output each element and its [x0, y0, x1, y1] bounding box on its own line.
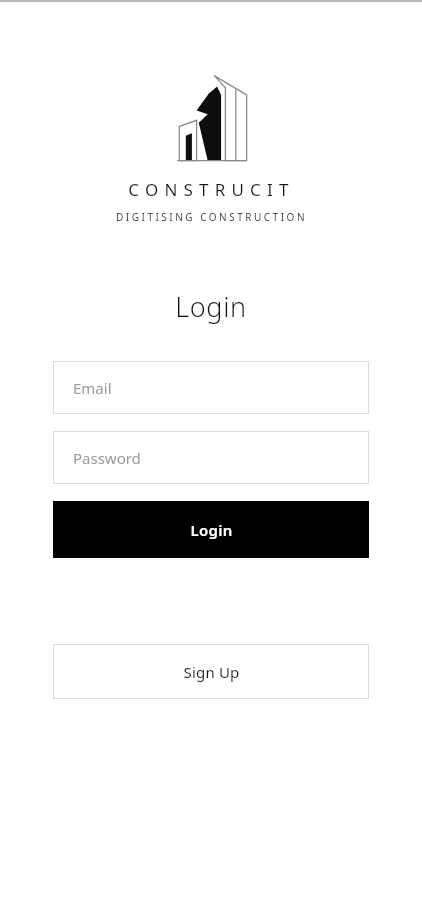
button[interactable]: Login: [53, 501, 369, 558]
staticText: Password: [73, 448, 141, 468]
staticText: CONSTRUCIT: [128, 178, 295, 201]
staticText: Login: [175, 288, 247, 325]
staticText: Email: [73, 378, 112, 398]
staticText: DIGITISING CONSTRUCTION: [116, 210, 307, 224]
button[interactable]: Email: [53, 361, 369, 414]
staticText: Login: [190, 520, 233, 540]
button[interactable]: Sign Up: [53, 644, 369, 699]
staticText: Sign Up: [183, 662, 240, 682]
button[interactable]: Password: [53, 431, 369, 484]
